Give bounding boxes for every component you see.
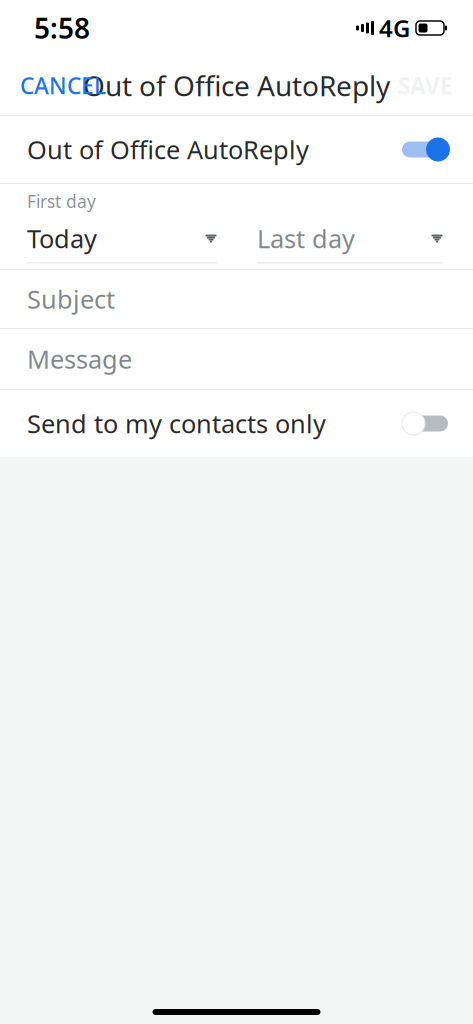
button[interactable]: Message [0,329,473,389]
staticText: Message [27,342,132,376]
button[interactable]: CANCEL [2,58,124,112]
staticText: Subject [27,282,115,316]
button[interactable]: SAVE [380,58,471,112]
staticText: 5:58 [34,9,90,47]
staticText: Send to my contacts only [27,407,326,440]
staticText: SAVE [398,70,453,100]
button[interactable]: Today [27,222,217,263]
staticText: Out of Office AutoReply [27,133,309,166]
button[interactable]: Out of Office AutoReply [0,116,473,183]
staticText: Out of Office AutoReply [83,67,390,104]
staticText: First day [27,190,96,213]
staticText: Today [27,222,97,255]
staticText: Last day [257,222,355,255]
button[interactable]: Subject [0,270,473,328]
button[interactable]: Send to my contacts only [0,390,473,457]
staticText: CANCEL [20,70,106,100]
staticText: 4G [379,12,410,44]
button[interactable]: Last day [257,222,443,263]
